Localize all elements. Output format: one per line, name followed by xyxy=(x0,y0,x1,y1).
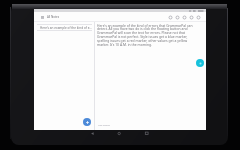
staticText: Last edited xyxy=(98,124,110,127)
staticText: Here's an example of the kind of e... xyxy=(40,26,92,30)
button[interactable]: New note xyxy=(83,118,91,126)
button[interactable]: Recent apps xyxy=(142,129,152,139)
button[interactable]: Add reminder xyxy=(188,13,195,21)
staticText: All Notes xyxy=(47,15,60,19)
button[interactable]: Check grammar xyxy=(196,59,204,67)
button[interactable]: Redo xyxy=(174,13,181,21)
button[interactable]: Share xyxy=(181,13,188,21)
button[interactable]: Home xyxy=(114,129,124,139)
button[interactable]: Undo xyxy=(167,13,174,21)
button[interactable]: Open navigation drawer xyxy=(39,14,45,20)
staticText: Here's an example of the kind of errors … xyxy=(97,23,197,47)
button[interactable]: Back xyxy=(88,129,98,139)
button[interactable]: More options xyxy=(195,13,202,21)
button[interactable]: Here's an example of the kind of e... xyxy=(37,24,92,31)
